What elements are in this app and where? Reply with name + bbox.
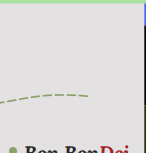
staticText: Dei <box>99 140 130 153</box>
staticText: Bon Bon <box>24 140 99 153</box>
